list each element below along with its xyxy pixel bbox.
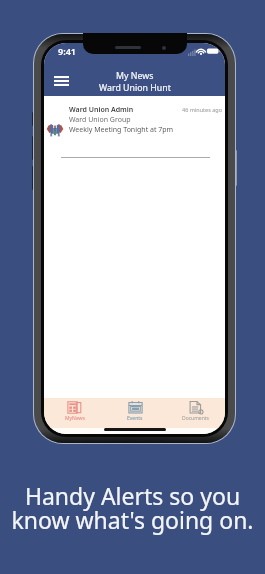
staticText: 46 minutes ago (182, 106, 223, 113)
button[interactable]: MyNews (44, 398, 105, 428)
button[interactable]: Events (105, 398, 165, 428)
button[interactable]: Ward Union Admin (44, 96, 225, 158)
staticText: MyNews (65, 415, 85, 422)
staticText: 9:41 (58, 45, 76, 57)
staticText: Handy Alerts so you know what's going on… (0, 480, 265, 536)
staticText: My News (116, 70, 154, 82)
staticText: Weekly Meeting Tonight at 7pm (69, 125, 174, 135)
button[interactable]: Open navigation menu (49, 71, 73, 90)
staticText: Ward Union Group (69, 115, 131, 125)
button[interactable]: Documents (165, 398, 225, 428)
staticText: Ward Union Admin (69, 105, 134, 115)
staticText: Events (127, 415, 143, 422)
staticText: Documents (182, 415, 209, 422)
staticText: Ward Union Hunt (99, 82, 171, 94)
